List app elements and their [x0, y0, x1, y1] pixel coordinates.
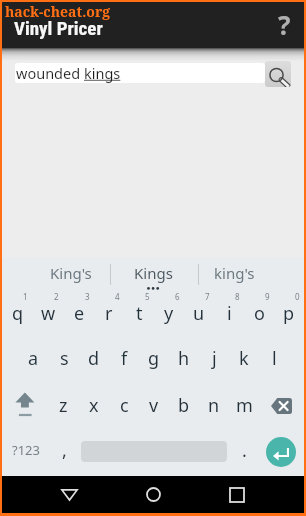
button[interactable]: k — [229, 335, 259, 382]
button[interactable]: Shift — [2, 382, 48, 429]
button[interactable]: Back — [53, 476, 85, 513]
button[interactable]: g — [139, 335, 169, 382]
staticText: 3 — [85, 291, 90, 302]
button[interactable]: . — [230, 429, 258, 474]
staticText: 9 — [265, 291, 270, 302]
staticText: m — [236, 393, 253, 418]
staticText: Vinyl Pricer — [14, 17, 103, 39]
button[interactable]: 0 — [274, 288, 304, 335]
staticText: u — [193, 301, 205, 326]
button[interactable]: c — [109, 382, 139, 429]
button[interactable]: 2 — [33, 288, 64, 335]
staticText: 8 — [235, 291, 240, 302]
staticText: z — [59, 393, 68, 418]
button[interactable]: 1 — [2, 288, 33, 335]
button[interactable]: 6 — [154, 288, 184, 335]
staticText: ? — [278, 7, 291, 42]
staticText: 0 — [295, 291, 300, 302]
button[interactable]: Home — [137, 476, 169, 513]
button[interactable]: d — [79, 335, 109, 382]
staticText: 1 — [23, 291, 28, 302]
button[interactable]: , — [50, 429, 78, 474]
button[interactable]: Search — [265, 61, 291, 87]
button[interactable]: f — [109, 335, 139, 382]
staticText: wounded — [16, 63, 84, 83]
staticText: c — [120, 393, 129, 418]
button[interactable]: j — [199, 335, 229, 382]
button[interactable]: Enter — [258, 429, 304, 474]
staticText: w — [41, 301, 56, 326]
staticText: t — [136, 301, 143, 326]
staticText: x — [89, 393, 99, 418]
button[interactable]: z — [48, 382, 79, 429]
button[interactable]: 4 — [94, 288, 124, 335]
button[interactable]: h — [169, 335, 199, 382]
button[interactable]: l — [259, 335, 289, 382]
staticText: , — [62, 438, 67, 463]
staticText: o — [254, 301, 265, 326]
button[interactable]: 8 — [214, 288, 244, 335]
button[interactable]: King's — [30, 257, 112, 290]
staticText: King's — [50, 263, 92, 283]
button[interactable]: wounded — [15, 63, 265, 83]
button[interactable]: ?123 — [2, 429, 50, 474]
button[interactable]: Help — [264, 5, 304, 45]
button[interactable]: x — [79, 382, 109, 429]
staticText: n — [208, 393, 220, 418]
staticText: 5 — [145, 291, 150, 302]
staticText: 6 — [175, 291, 180, 302]
staticText: p — [283, 301, 295, 326]
staticText: j — [212, 346, 217, 371]
staticText: i — [227, 301, 232, 326]
staticText: g — [148, 346, 160, 371]
staticText: 4 — [115, 291, 120, 302]
button[interactable]: v — [139, 382, 169, 429]
button[interactable]: b — [169, 382, 199, 429]
button[interactable]: n — [199, 382, 229, 429]
button[interactable]: 7 — [184, 288, 214, 335]
staticText: y — [164, 301, 174, 326]
button[interactable]: Kings — [112, 257, 194, 290]
button[interactable] — [78, 429, 230, 474]
staticText: Kings — [134, 263, 173, 283]
button[interactable]: 5 — [124, 288, 154, 335]
button[interactable]: Recents — [221, 476, 253, 513]
staticText: d — [88, 346, 100, 371]
staticText: v — [149, 393, 159, 418]
staticText: e — [74, 301, 85, 326]
staticText: . — [242, 438, 247, 463]
staticText: s — [60, 346, 69, 371]
staticText: b — [178, 393, 190, 418]
button[interactable]: 9 — [244, 288, 274, 335]
staticText: kings — [84, 63, 121, 83]
staticText: a — [28, 346, 39, 371]
staticText: q — [12, 301, 24, 326]
staticText: hack-cheat.org — [5, 2, 111, 21]
button[interactable]: 3 — [64, 288, 94, 335]
button[interactable]: s — [49, 335, 79, 382]
staticText: r — [105, 301, 113, 326]
staticText: king's — [214, 263, 255, 283]
staticText: 7 — [205, 291, 210, 302]
button[interactable]: king's — [193, 257, 275, 290]
staticText: 2 — [54, 291, 59, 302]
button[interactable]: m — [229, 382, 259, 429]
staticText: k — [239, 346, 249, 371]
button[interactable]: a — [18, 335, 49, 382]
button[interactable]: Backspace — [259, 382, 304, 429]
staticText: h — [178, 346, 190, 371]
staticText: f — [121, 346, 128, 371]
staticText: l — [272, 346, 277, 371]
staticText: ?123 — [12, 441, 40, 459]
